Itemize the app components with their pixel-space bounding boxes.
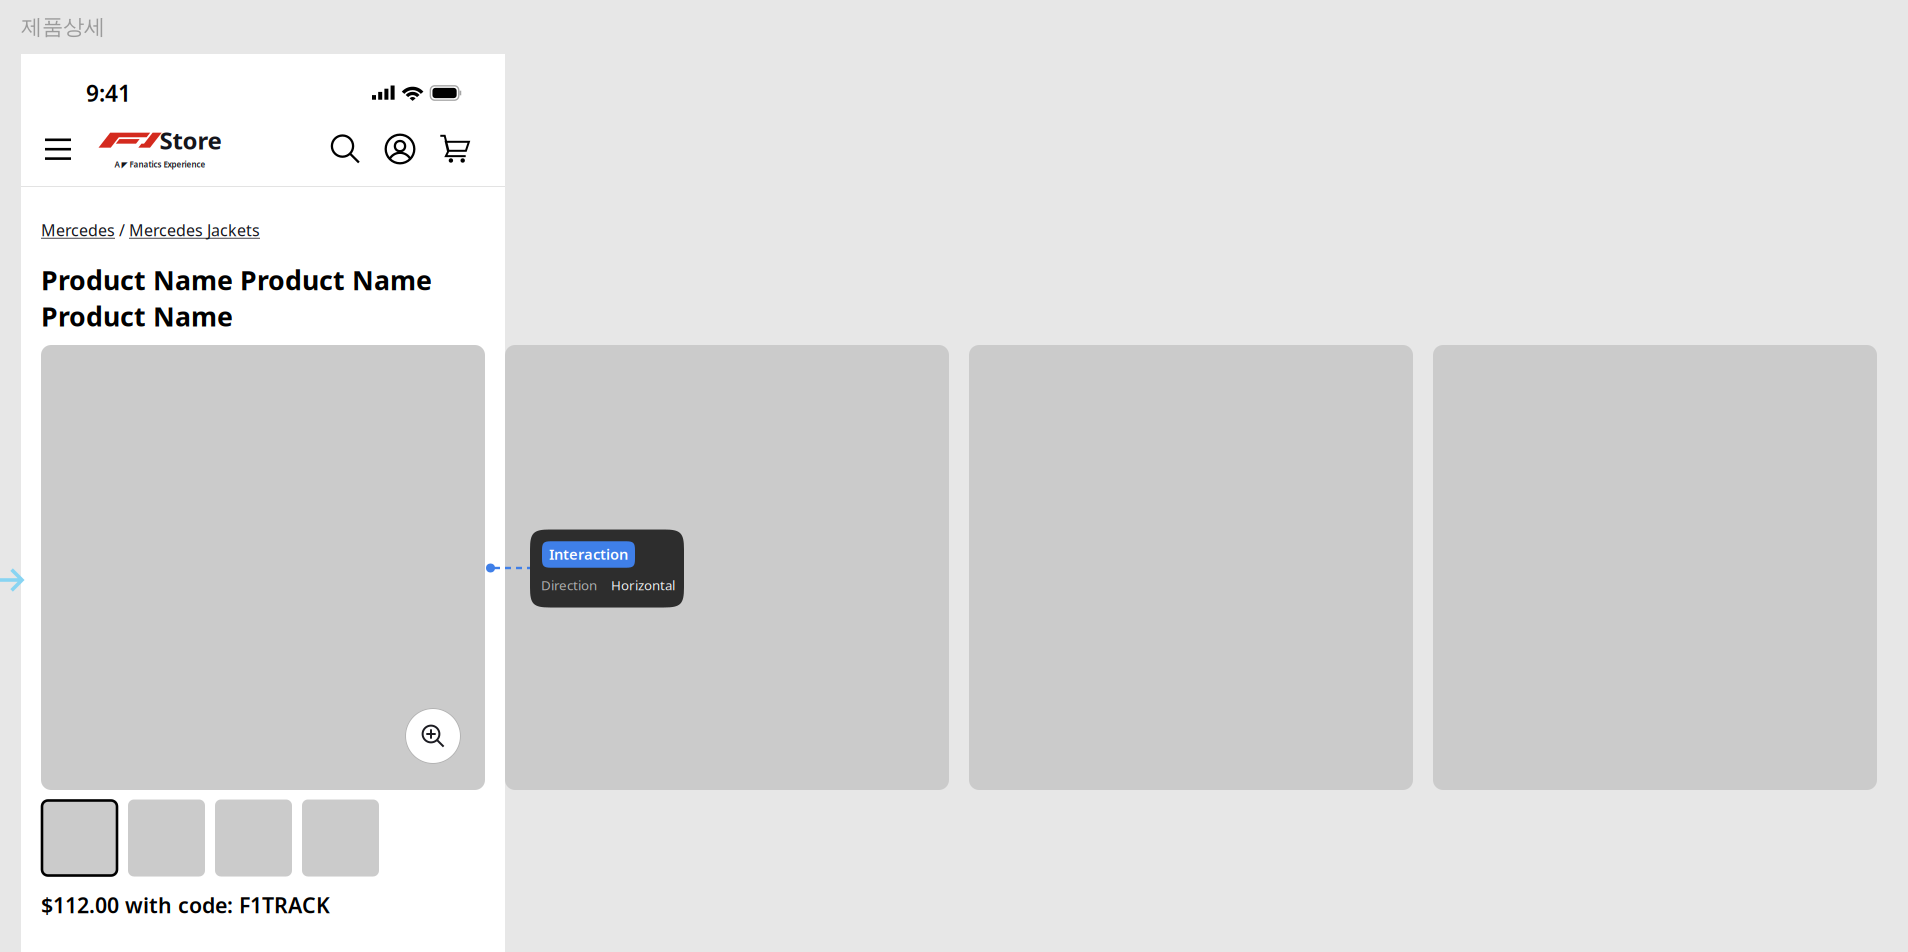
staticText: Mercedes — [41, 219, 115, 241]
staticText: 9:41 — [86, 78, 131, 108]
button[interactable]: Search — [330, 134, 360, 164]
staticText: Mercedes Jackets — [129, 219, 260, 241]
button[interactable]: Mercedes Jackets — [129, 219, 260, 241]
button[interactable]: Account — [384, 133, 415, 164]
staticText: Direction — [541, 576, 597, 594]
staticText: $112.00 with code: F1TRACK — [41, 891, 330, 919]
staticText: / — [115, 219, 129, 241]
button[interactable]: Image 1, selected — [41, 799, 118, 876]
staticText: Interaction — [549, 544, 628, 564]
staticText: Horizontal — [611, 576, 675, 594]
button[interactable]: Mercedes — [41, 219, 115, 241]
staticText: A ◤ Fanatics Experience — [114, 159, 205, 170]
button[interactable]: F1 Store home — [98, 124, 221, 170]
staticText: Product Name — [41, 298, 233, 334]
button[interactable]: Cart — [439, 134, 469, 164]
button[interactable]: Menu — [36, 127, 80, 171]
staticText: 제품상세 — [21, 14, 105, 40]
button[interactable]: Zoom image — [405, 708, 461, 764]
staticText: Store — [159, 124, 221, 156]
staticText: Product Name Product Name — [41, 262, 432, 297]
